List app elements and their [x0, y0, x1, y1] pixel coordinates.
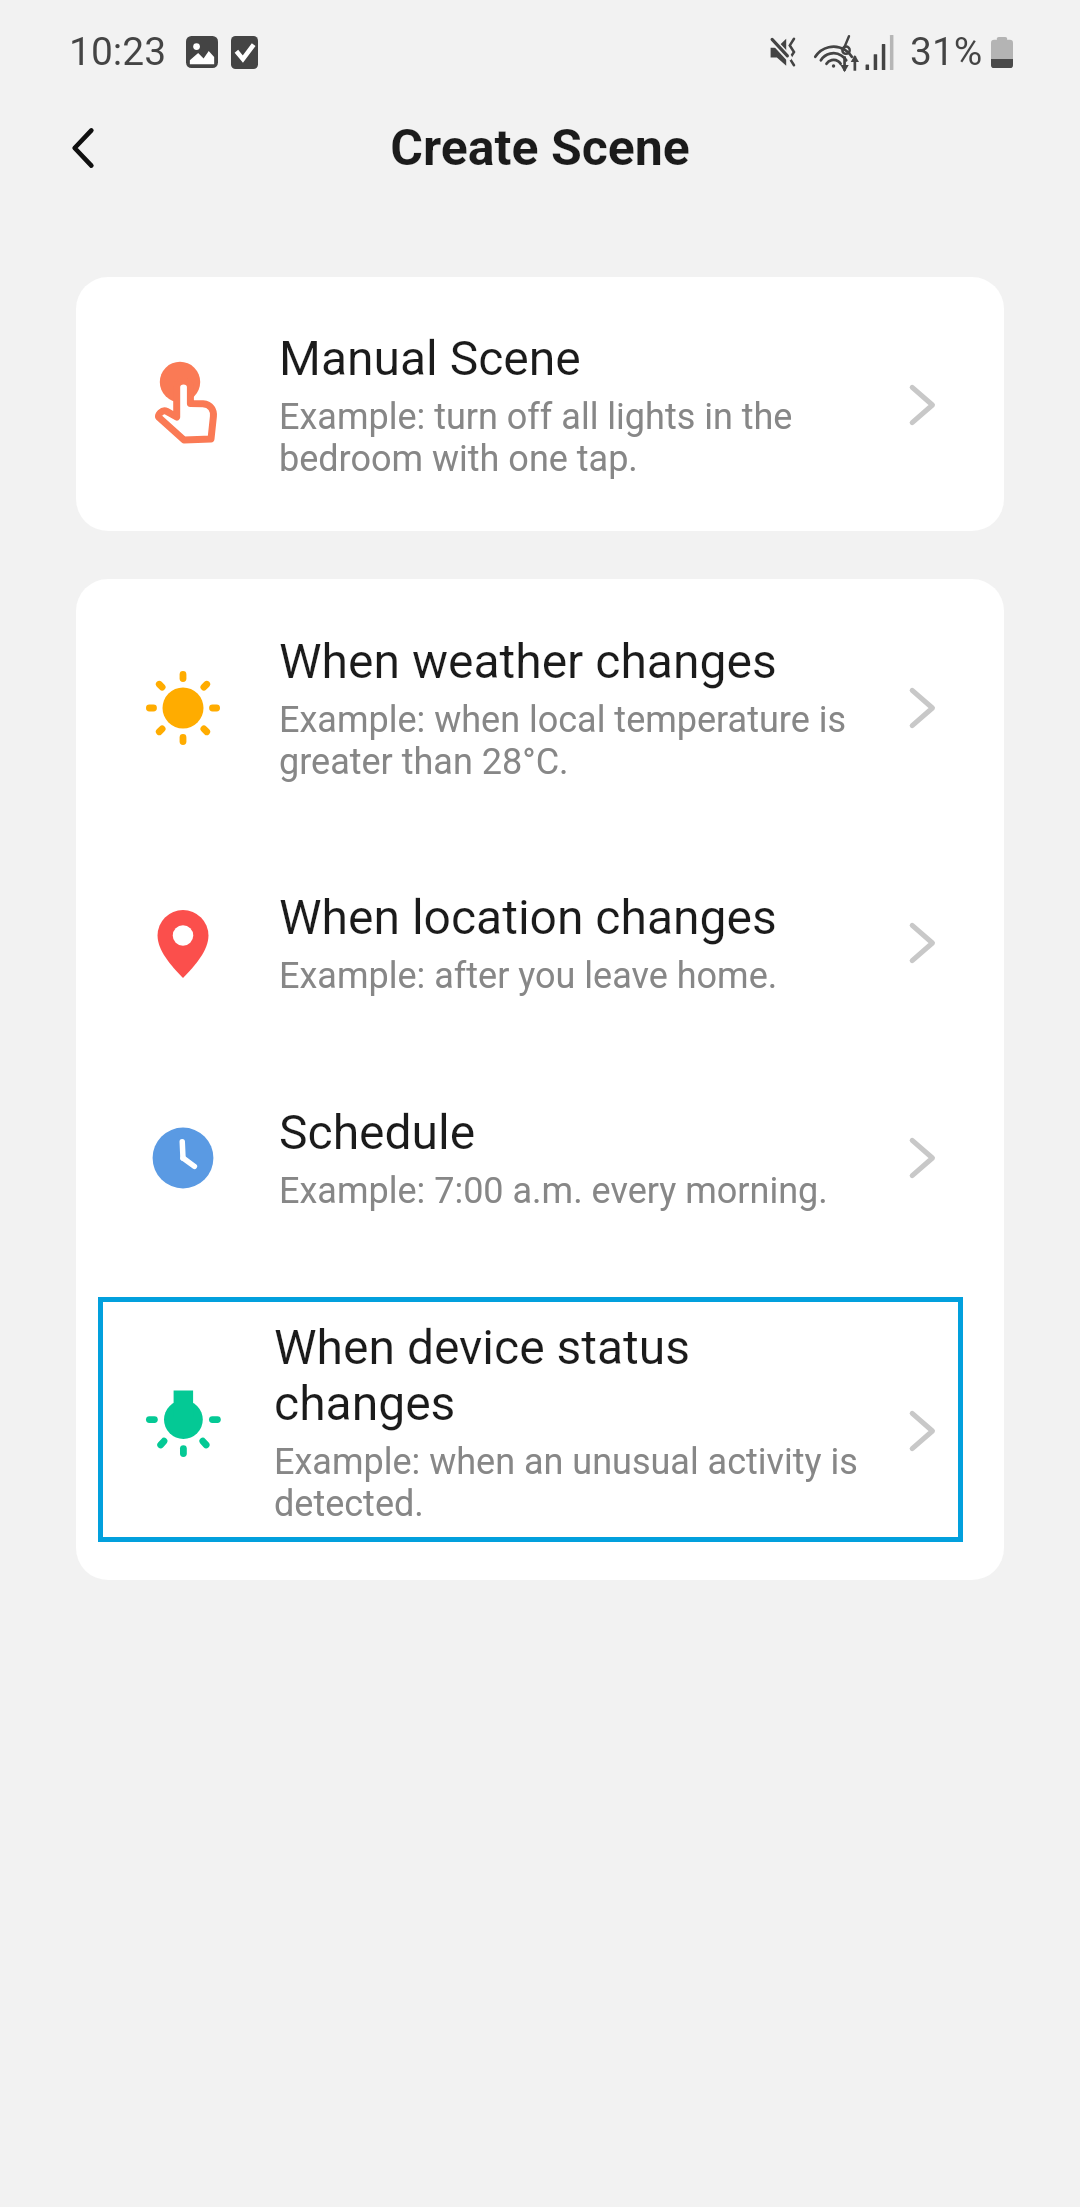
button[interactable]: Schedule — [76, 1051, 1004, 1266]
button[interactable]: When device status changes — [98, 1297, 963, 1542]
button[interactable]: Manual Scene — [76, 277, 1004, 531]
staticText: When device status changes — [274, 1319, 691, 1431]
staticText: Create Scene — [390, 119, 690, 178]
staticText: Example: turn off all lights in the bedr… — [279, 396, 793, 480]
staticText: 10:23 — [69, 29, 167, 75]
staticText: When location changes — [279, 889, 777, 945]
staticText: Schedule — [279, 1104, 476, 1160]
button[interactable]: Back — [31, 104, 135, 192]
button[interactable]: When location changes — [76, 836, 1004, 1051]
staticText: Example: when an unusual activity is det… — [274, 1441, 858, 1525]
staticText: When weather changes — [279, 633, 777, 689]
button[interactable]: When weather changes — [76, 579, 1004, 836]
staticText: Example: 7:00 a.m. every morning. — [279, 1170, 828, 1212]
staticText: Example: when local temperature is great… — [279, 699, 847, 783]
staticText: Manual Scene — [279, 330, 581, 386]
staticText: 31% — [910, 29, 983, 75]
staticText: Example: after you leave home. — [279, 955, 778, 997]
